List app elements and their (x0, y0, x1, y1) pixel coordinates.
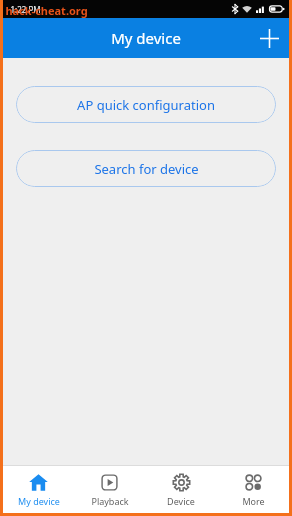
button[interactable]: Add device (249, 18, 289, 58)
staticText: My device (18, 495, 60, 507)
button[interactable]: My device (3, 466, 74, 513)
staticText: Search for device (94, 160, 199, 178)
button[interactable]: Device (145, 466, 217, 513)
button[interactable]: Search for device (16, 150, 276, 187)
button[interactable]: Playback (74, 466, 145, 513)
staticText: Playback (91, 495, 129, 507)
button[interactable]: More (217, 466, 289, 513)
staticText: More (242, 495, 265, 507)
staticText: Device (167, 495, 195, 507)
staticText: 1:22 PM (10, 4, 41, 15)
staticText: hack-cheat.org (5, 3, 88, 18)
staticText: AP quick configuration (77, 96, 215, 114)
staticText: My device (111, 28, 181, 48)
button[interactable]: AP quick configuration (16, 86, 276, 123)
